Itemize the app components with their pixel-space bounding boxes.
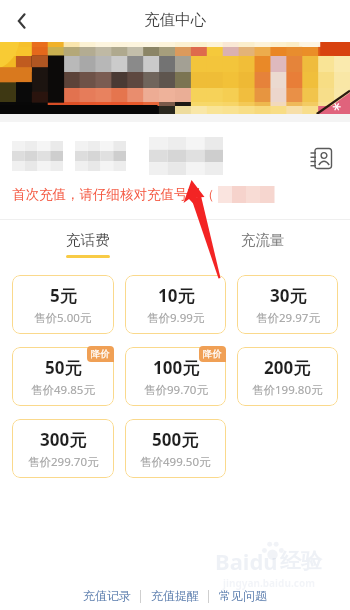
staticText: | bbox=[131, 587, 151, 603]
staticText: 500元 bbox=[152, 428, 199, 451]
button[interactable]: 300元 bbox=[12, 419, 114, 478]
staticText: 售价499.50元 bbox=[140, 454, 211, 470]
staticText: 经验 bbox=[280, 548, 322, 574]
staticText: 5元 bbox=[50, 284, 77, 307]
button[interactable]: 充话费 bbox=[50, 231, 126, 258]
staticText: 售价29.97元 bbox=[256, 310, 320, 326]
staticText: 50元 bbox=[45, 356, 82, 379]
staticText: 降价 bbox=[203, 348, 222, 360]
button[interactable]: 充值提醒 bbox=[151, 588, 199, 603]
staticText: 100元 bbox=[153, 356, 200, 379]
button[interactable]: 充值记录 bbox=[83, 588, 131, 603]
button[interactable]: 200元 bbox=[237, 347, 338, 406]
button[interactable]: Back bbox=[6, 5, 38, 37]
staticText: 首次充值，请仔细核对充值号码（ bbox=[12, 186, 215, 203]
staticText: 降价 bbox=[91, 348, 110, 360]
staticText: 售价299.70元 bbox=[28, 454, 99, 470]
staticText: 30元 bbox=[270, 284, 307, 307]
staticText: 售价9.99元 bbox=[147, 310, 205, 326]
staticText: 充话费 bbox=[66, 231, 110, 249]
button[interactable]: Contacts bbox=[305, 142, 337, 174]
staticText: 10元 bbox=[158, 284, 195, 307]
staticText: 充流量 bbox=[241, 231, 285, 249]
staticText: 售价199.80元 bbox=[252, 382, 323, 398]
button[interactable]: 30元 bbox=[237, 275, 338, 334]
button[interactable]: 50元 bbox=[12, 347, 114, 406]
staticText: jingyan.baidu.com bbox=[223, 576, 315, 590]
staticText: 300元 bbox=[40, 428, 87, 451]
button[interactable]: 5元 bbox=[12, 275, 114, 334]
staticText: 售价5.00元 bbox=[34, 310, 92, 326]
staticText: Baidu bbox=[215, 546, 278, 576]
staticText: 售价49.85元 bbox=[31, 382, 95, 398]
button[interactable]: 100元 bbox=[125, 347, 226, 406]
staticText: | bbox=[199, 587, 219, 603]
staticText: 充值中心 bbox=[144, 10, 206, 30]
button[interactable]: 10元 bbox=[125, 275, 226, 334]
button[interactable]: 500元 bbox=[125, 419, 226, 478]
button[interactable]: 充流量 bbox=[225, 231, 301, 258]
staticText: 售价99.70元 bbox=[144, 382, 208, 398]
staticText: 200元 bbox=[264, 356, 311, 379]
button[interactable]: 常见问题 bbox=[219, 588, 267, 603]
